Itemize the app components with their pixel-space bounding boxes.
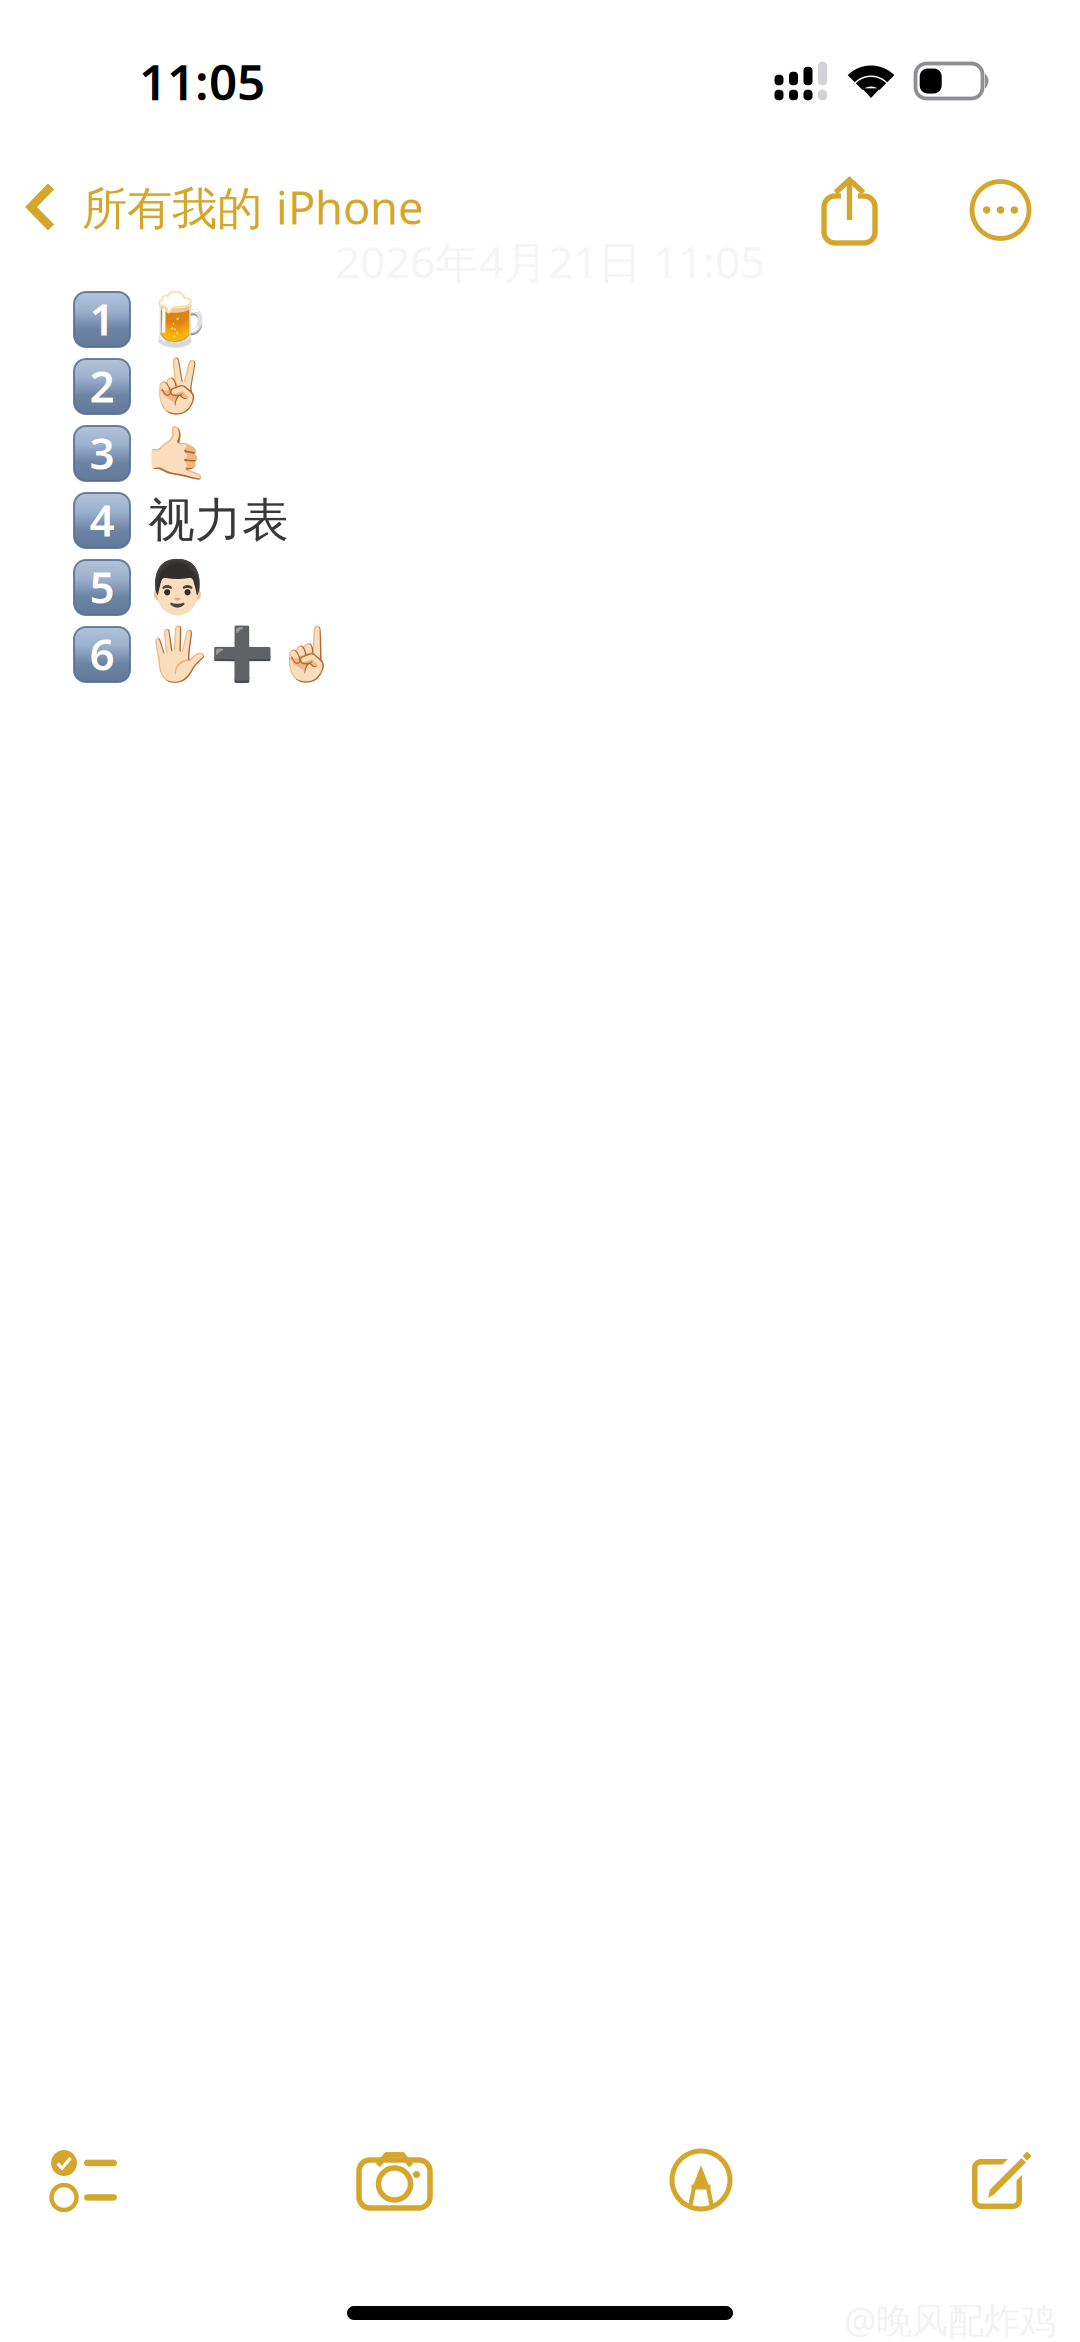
staticText: 👨🏻 [145, 558, 210, 617]
staticText: @晚风配炸鸡 [844, 2296, 1056, 2342]
staticText: 2026年4月21日 11:05 [335, 232, 765, 290]
staticText: 6 [89, 624, 114, 683]
staticText: 视力表 [148, 492, 289, 549]
button[interactable]: New note [954, 2129, 1048, 2231]
staticText: 3 [89, 423, 114, 482]
staticText: ✌🏻 [145, 357, 210, 416]
staticText: 4 [89, 490, 114, 549]
button[interactable]: Share [810, 177, 889, 243]
staticText: 2 [89, 356, 114, 415]
staticText: 1 [89, 289, 114, 348]
button[interactable]: Camera [341, 2130, 448, 2230]
button[interactable]: Checklist [33, 2128, 135, 2232]
staticText: 🍺 [145, 290, 210, 349]
staticText: 5 [89, 557, 114, 616]
button[interactable]: Markup [654, 2129, 748, 2231]
staticText: 所有我的 iPhone [82, 177, 424, 237]
staticText: 11:05 [139, 48, 265, 114]
staticText: 🤙🏻 [145, 424, 210, 483]
staticText: 🖐🏻➕☝🏻 [145, 625, 340, 684]
button[interactable]: 所有我的 iPhone [0, 173, 424, 247]
button[interactable]: More options [958, 181, 1043, 238]
